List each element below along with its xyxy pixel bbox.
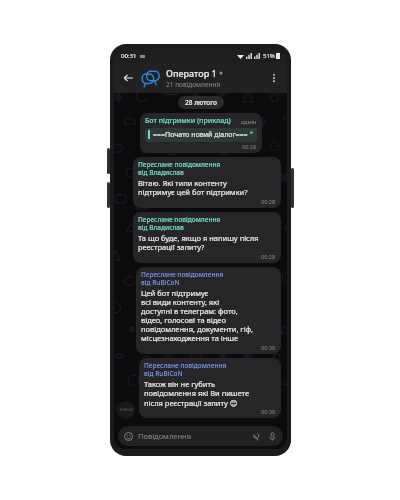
- staticText: 28 лютого: [185, 98, 217, 107]
- staticText: RuBiCoN: [120, 408, 133, 412]
- button[interactable]: Переслане повідомлення від RuBiCoN: [139, 358, 281, 418]
- button[interactable]: Emoji: [118, 426, 283, 446]
- staticText: Переслане повідомлення від Владислав: [138, 215, 221, 232]
- button[interactable]: Attach: [251, 431, 262, 442]
- staticText: Переслане повідомлення від RuBiCoN: [144, 361, 227, 378]
- staticText: 21 повідомлення: [166, 80, 221, 89]
- button[interactable]: Переслане повідомлення від RuBiCoN: [136, 267, 281, 354]
- staticText: Бот підтримки (приклад): [145, 116, 231, 126]
- button[interactable]: More options: [266, 70, 282, 86]
- staticText: 00:28: [261, 198, 276, 205]
- staticText: 51%: [263, 52, 275, 60]
- staticText: 00:28: [261, 253, 276, 260]
- staticText: Оператор 1: [166, 67, 217, 79]
- staticText: Пересланe повідомлення від Владислав: [138, 160, 221, 177]
- staticText: Та що буде, якщо я напишу після реєстрац…: [138, 233, 259, 253]
- staticText: адмін: [241, 118, 257, 125]
- button[interactable]: Оператор 1: [166, 67, 266, 89]
- button[interactable]: Переслане повідомлення від Владислав: [133, 212, 281, 263]
- staticText: ❞: [250, 130, 254, 137]
- button[interactable]: Back: [119, 69, 137, 87]
- staticText: Вітаю. Які типи контенту підтримує цей б…: [138, 178, 248, 198]
- staticText: Переслане повідомлення від RuBiCoN: [141, 270, 224, 287]
- staticText: 00:30: [261, 408, 276, 415]
- staticText: Повідомлення: [138, 431, 191, 441]
- button[interactable]: 28 лютого: [185, 98, 217, 107]
- staticText: Також він не губить повідомлення які Ви …: [144, 379, 250, 408]
- staticText: Цей бот підтримує всі види контенту, які…: [141, 288, 254, 344]
- button[interactable]: Emoji: [123, 431, 134, 442]
- button[interactable]: Пересланe повідомлення від Владислав: [133, 157, 281, 208]
- staticText: ===Почато новий діалог===: [153, 130, 250, 140]
- staticText: 00:30: [261, 344, 276, 351]
- button[interactable]: Бот підтримки (приклад): [140, 113, 262, 153]
- button[interactable]: Voice message: [267, 431, 278, 442]
- staticText: 00:31: [121, 52, 137, 60]
- staticText: 00:28: [242, 143, 257, 150]
